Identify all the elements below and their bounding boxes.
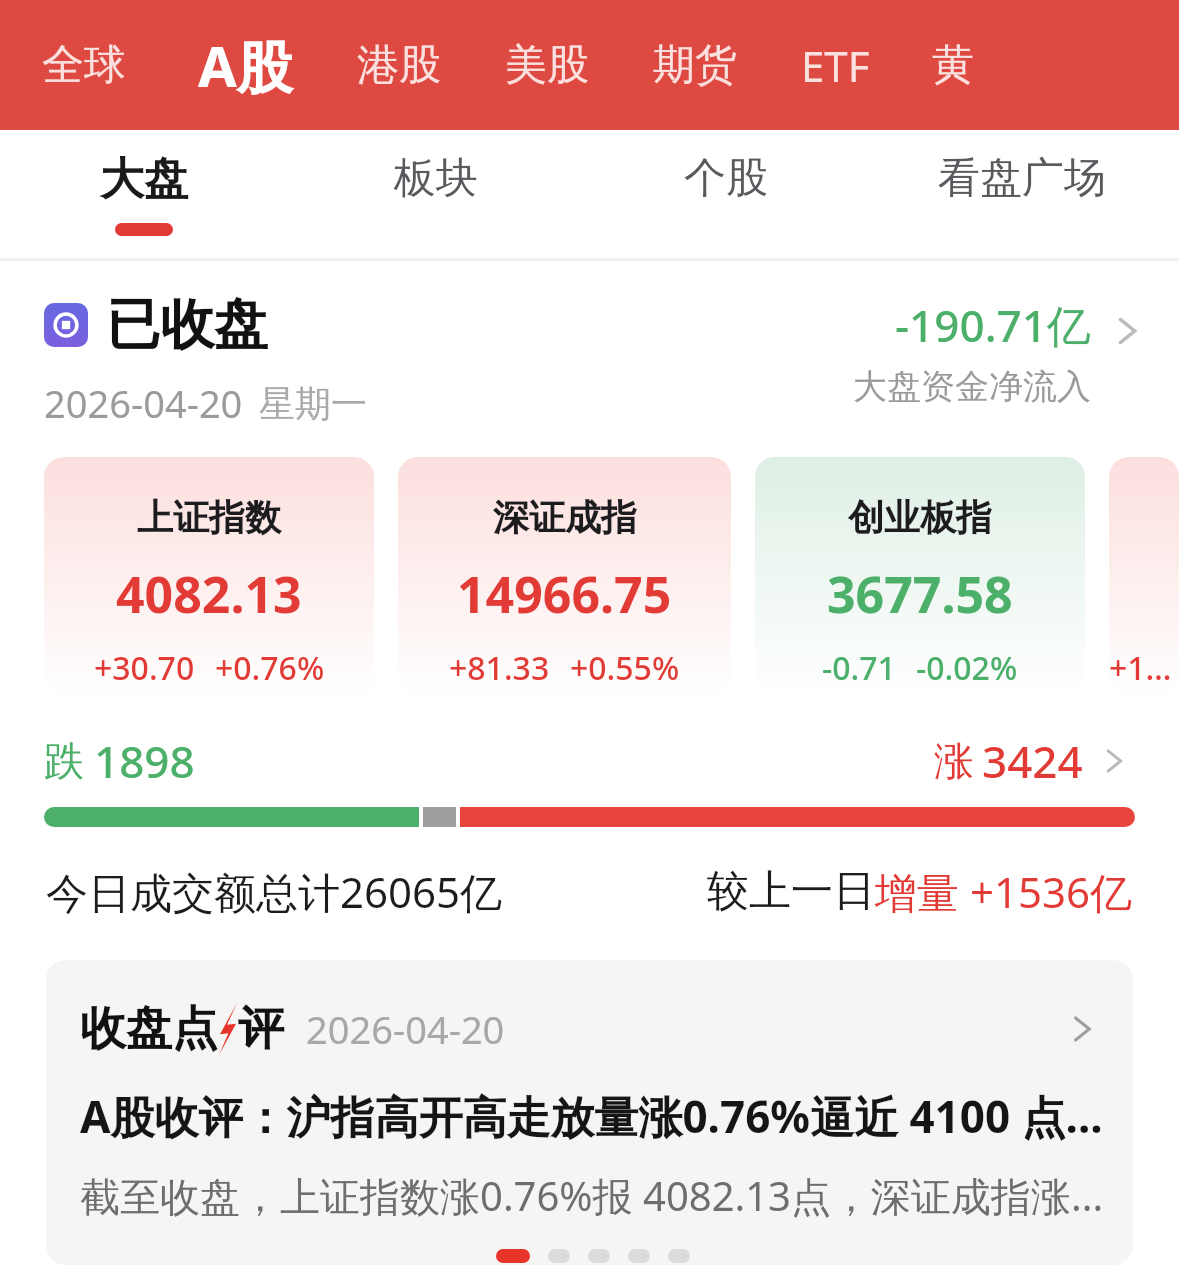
button[interactable]: A股 (198, 27, 293, 103)
staticText: 期货 (653, 39, 737, 92)
staticText: 2026-04-20 (306, 1003, 505, 1055)
staticText: 全球 (42, 39, 126, 92)
staticText: 增量 +1536亿 (875, 863, 1133, 920)
staticText: 已收盘 (106, 291, 268, 359)
staticText: 2026-04-20 (44, 377, 243, 429)
staticText: 大盘资金净流入 (853, 365, 1091, 408)
staticText: +0.55% (570, 646, 680, 690)
staticText: 黄 (932, 39, 974, 92)
staticText: -0.71 (822, 646, 896, 690)
button[interactable]: 已收盘 (44, 291, 1151, 429)
button[interactable]: 创业板指 (755, 457, 1085, 697)
button[interactable]: 收盘点 (46, 960, 1133, 1265)
staticText: +30.70 (94, 646, 195, 690)
staticText: +0.76% (215, 646, 325, 690)
button[interactable]: 大盘 (100, 152, 188, 236)
staticText: 1898 (94, 731, 195, 791)
staticText: 3424 (982, 731, 1083, 791)
button[interactable]: 板块 (394, 152, 478, 205)
staticText: 14966.75 (457, 560, 672, 628)
staticText: 较上一日 (707, 865, 875, 918)
button[interactable]: 期货 (653, 39, 737, 92)
staticText: 截至收盘，上证指数涨0.76%报 4082.13点，深证成指涨... (80, 1168, 1105, 1223)
staticText: 评 (238, 1000, 284, 1058)
staticText: 星期一 (259, 381, 367, 426)
button[interactable]: 港股 (357, 39, 441, 92)
staticText: -190.71亿 (895, 295, 1091, 355)
staticText: 深证成指 (493, 495, 637, 540)
staticText: -0.02% (916, 646, 1018, 690)
staticText: A股 (198, 27, 293, 103)
button[interactable]: 全球 (42, 39, 126, 92)
staticText: 大盘 (100, 152, 188, 207)
staticText: +81.33 (449, 646, 550, 690)
staticText: A股收评：沪指高开高走放量涨0.76%逼近 4100 点... (80, 1086, 1105, 1146)
staticText: 收盘点 (80, 1000, 218, 1058)
button[interactable]: 黄 (932, 39, 974, 92)
staticText: 看盘广场 (938, 152, 1106, 205)
button[interactable]: 看盘广场 (938, 152, 1106, 205)
button[interactable]: 上证指数 (44, 457, 374, 697)
staticText: ETF (801, 37, 870, 94)
button[interactable]: 沪深300 (1109, 457, 1179, 697)
button[interactable]: 跌 (44, 731, 1135, 827)
staticText: +12.00 (1109, 646, 1179, 690)
staticText: 美股 (505, 39, 589, 92)
staticText: 板块 (394, 152, 478, 205)
button[interactable]: ETF (801, 37, 870, 94)
staticText: 港股 (357, 39, 441, 92)
staticText: 创业板指 (848, 495, 992, 540)
button[interactable]: 查看收盘点评 (1059, 1006, 1105, 1052)
button[interactable]: 个股 (684, 152, 768, 205)
staticText: 3677.58 (827, 560, 1013, 628)
button[interactable]: 资金净流入详情 (1103, 307, 1151, 355)
staticText: 跌 (44, 736, 84, 786)
button[interactable]: 深证成指 (398, 457, 731, 697)
staticText: 涨 (934, 736, 974, 786)
staticText: 个股 (684, 152, 768, 205)
staticText: 上证指数 (137, 495, 281, 540)
staticText: 今日成交额总计26065亿 (46, 863, 503, 920)
staticText: 4082.13 (116, 560, 302, 628)
button[interactable]: 美股 (505, 39, 589, 92)
